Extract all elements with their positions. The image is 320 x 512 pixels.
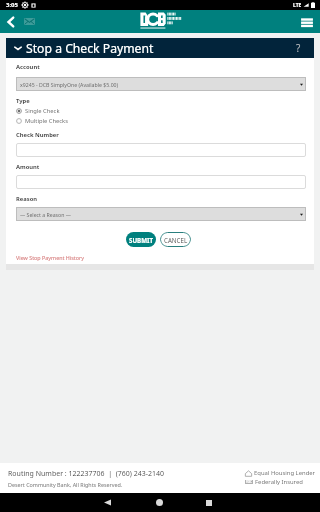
button[interactable]: CANCEL (160, 232, 191, 247)
staticText: Desert Community Bank, All Rights Reserv… (8, 481, 123, 488)
button[interactable] (16, 175, 306, 189)
staticText: Single Check (25, 107, 60, 115)
button[interactable]: Single Check (16, 107, 60, 115)
staticText: Reason (16, 195, 38, 203)
button[interactable]: Back (3, 14, 19, 30)
button[interactable]: Recents (199, 493, 219, 512)
staticText: Check Number (16, 131, 59, 139)
button[interactable]: — Select a Reason — (16, 207, 306, 221)
staticText: Multiple Checks (25, 117, 68, 125)
staticText: Routing Number : 122237706 | (760) 243-2… (8, 469, 165, 479)
staticText: Amount (16, 163, 40, 171)
staticText: x9245 - DCB SimplyOne (Available $5.00) (20, 81, 119, 88)
staticText: Equal Housing Lender (254, 469, 316, 477)
button[interactable]: Back (97, 493, 117, 512)
button[interactable]: Stop a Check Payment (6, 38, 314, 58)
button[interactable]: Help (291, 41, 305, 55)
staticText: — Select a Reason — (20, 211, 71, 218)
button[interactable]: Multiple Checks (16, 117, 68, 125)
staticText: Type (16, 97, 30, 105)
staticText: LTE (293, 2, 302, 9)
staticText: CANCEL (164, 236, 188, 244)
button[interactable] (16, 143, 306, 157)
button[interactable]: Home (149, 493, 169, 512)
staticText: SUBMIT (129, 236, 154, 244)
button[interactable]: SUBMIT (126, 232, 156, 247)
button[interactable]: x9245 - DCB SimplyOne (Available $5.00) (16, 77, 306, 91)
staticText: Account (16, 63, 40, 71)
button[interactable]: Messages (24, 18, 35, 25)
button[interactable]: Menu (299, 14, 315, 30)
staticText: FDIC (246, 480, 252, 484)
staticText: Federally Insured (255, 478, 303, 486)
staticText: Stop a Check Payment (26, 40, 154, 57)
staticText: 3:05 (6, 1, 18, 9)
staticText: ? (296, 41, 301, 55)
button[interactable]: View Stop Payment History (16, 254, 85, 261)
